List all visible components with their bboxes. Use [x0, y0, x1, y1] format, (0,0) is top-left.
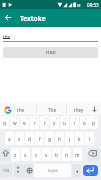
button[interactable]: o: [80, 116, 89, 129]
button[interactable]: y: [50, 116, 59, 129]
button[interactable]: f: [35, 132, 44, 145]
staticText: the: [17, 107, 25, 113]
button[interactable]: The: [37, 105, 67, 114]
staticText: u: [63, 120, 66, 126]
button[interactable]: q: [0, 116, 9, 129]
button[interactable]: k: [75, 132, 84, 145]
button[interactable]: b: [52, 148, 61, 161]
button[interactable]: n: [62, 148, 71, 161]
staticText: w: [13, 120, 17, 126]
button[interactable]: ?123: [0, 164, 12, 177]
staticText: j: [69, 136, 71, 142]
staticText: Textoke: [20, 14, 46, 23]
staticText: n: [65, 152, 68, 158]
button[interactable]: x: [21, 148, 30, 161]
button[interactable]: l: [85, 132, 94, 145]
staticText: 1: [6, 117, 8, 120]
button[interactable]: [14, 164, 23, 177]
button[interactable]: they: [67, 105, 91, 114]
button[interactable]: s: [15, 132, 24, 145]
button[interactable]: h: [55, 132, 64, 145]
button[interactable]: m: [73, 148, 82, 161]
button[interactable]: w: [10, 116, 19, 129]
staticText: r: [34, 120, 36, 126]
button[interactable]: r: [30, 116, 39, 129]
button[interactable]: t: [40, 116, 49, 129]
staticText: a: [8, 136, 11, 142]
staticText: The: [48, 107, 56, 113]
button[interactable]: a: [5, 132, 14, 145]
staticText: 7: [65, 117, 67, 120]
staticText: e: [23, 120, 26, 126]
staticText: y: [53, 120, 56, 126]
staticText: M: [77, 3, 81, 8]
staticText: they: [74, 107, 84, 113]
button[interactable]: u: [60, 116, 69, 129]
staticText: 4: [36, 117, 38, 120]
button[interactable]: the: [14, 105, 28, 114]
staticText: the: [3, 34, 11, 40]
staticText: 6: [56, 117, 58, 120]
staticText: 9: [85, 117, 87, 120]
staticText: 5: [46, 117, 48, 120]
staticText: k: [78, 136, 81, 142]
staticText: f: [39, 136, 41, 142]
staticText: ?123: [3, 169, 10, 173]
button[interactable]: j: [65, 132, 74, 145]
button[interactable]: g: [45, 132, 54, 145]
staticText: o: [83, 120, 86, 126]
staticText: b: [55, 152, 58, 158]
staticText: q: [3, 120, 6, 126]
button[interactable]: English: [34, 164, 71, 177]
staticText: d: [28, 136, 31, 142]
staticText: l: [89, 136, 91, 142]
button[interactable]: [0, 148, 10, 161]
staticText: 09:53: [87, 2, 99, 8]
staticText: m: [75, 152, 80, 158]
staticText: 0: [95, 117, 97, 120]
staticText: 2: [16, 117, 18, 120]
staticText: English: [48, 169, 58, 173]
button[interactable]: d: [25, 132, 34, 145]
button[interactable]: [23, 164, 33, 177]
button[interactable]: i: [70, 116, 79, 129]
staticText: h: [58, 136, 61, 142]
staticText: x: [24, 152, 27, 158]
staticText: t: [44, 120, 46, 126]
button[interactable]: FIND: [3, 47, 98, 58]
staticText: g: [48, 136, 51, 142]
staticText: FIND: [46, 50, 56, 55]
button[interactable]: [88, 148, 100, 161]
staticText: c: [35, 152, 38, 158]
staticText: z: [14, 152, 17, 158]
staticText: v: [45, 152, 48, 158]
button[interactable]: p: [89, 116, 98, 129]
staticText: s: [18, 136, 21, 142]
button[interactable]: e: [20, 116, 29, 129]
staticText: 8: [75, 117, 77, 120]
button[interactable]: [72, 164, 81, 177]
button[interactable]: [2, 11, 14, 24]
button[interactable]: c: [32, 148, 41, 161]
staticText: i: [74, 120, 76, 126]
button[interactable]: [83, 165, 98, 176]
button[interactable]: z: [11, 148, 20, 161]
staticText: p: [92, 120, 95, 126]
button[interactable]: v: [42, 148, 51, 161]
staticText: 3: [26, 117, 28, 120]
